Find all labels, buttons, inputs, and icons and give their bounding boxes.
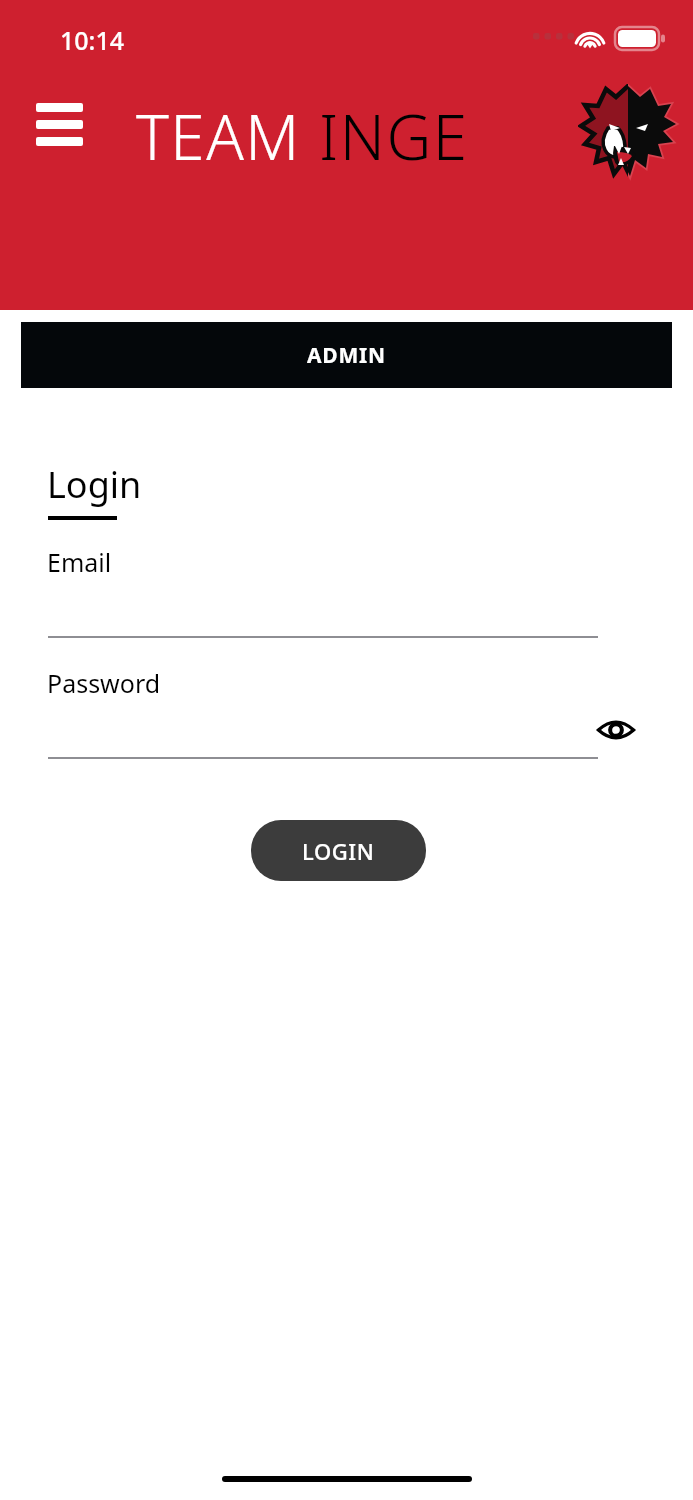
staticText: TEAM bbox=[136, 94, 319, 178]
button[interactable] bbox=[48, 712, 588, 758]
staticText: Password bbox=[47, 666, 161, 700]
staticText: INGE bbox=[319, 94, 469, 178]
staticText: LOGIN bbox=[302, 836, 375, 866]
staticText: 10:14 bbox=[60, 23, 125, 57]
button[interactable]: Show password bbox=[592, 706, 640, 754]
button[interactable]: ADMIN bbox=[21, 322, 672, 388]
button[interactable]: Open navigation menu bbox=[30, 92, 86, 148]
staticText: Login bbox=[47, 460, 142, 509]
button[interactable]: LOGIN bbox=[251, 820, 426, 881]
button[interactable] bbox=[48, 590, 598, 638]
staticText: Email bbox=[47, 545, 112, 579]
staticText: ADMIN bbox=[307, 341, 386, 370]
